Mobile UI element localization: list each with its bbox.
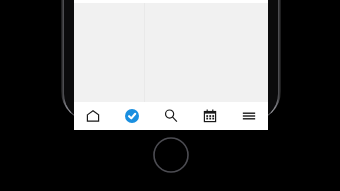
button[interactable]: Menu	[229, 102, 268, 130]
button[interactable]: Home button	[153, 137, 189, 173]
button[interactable]: Home	[74, 102, 112, 130]
button[interactable]: Calendar	[190, 102, 229, 130]
button[interactable]: Tasks	[112, 102, 151, 130]
button[interactable]: Search	[151, 102, 190, 130]
